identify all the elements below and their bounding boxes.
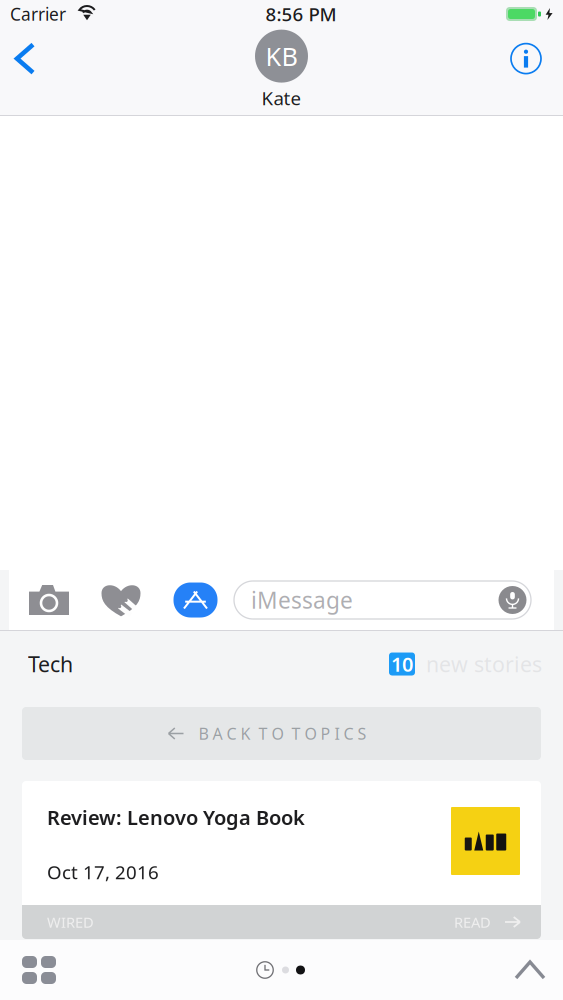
staticText: Carrier	[10, 2, 66, 25]
button[interactable]: B A C K T O T O P I C S	[22, 707, 541, 760]
staticText: Kate	[261, 86, 301, 110]
button[interactable]: Camera	[13, 570, 85, 630]
staticText: B A C K T O T O P I C S	[198, 723, 366, 744]
staticText: WIRED	[47, 912, 94, 932]
staticText: Oct 17, 2016	[47, 860, 159, 884]
staticText: 10	[391, 651, 413, 677]
button[interactable]: Digital Touch	[85, 570, 157, 630]
button[interactable]: Expand	[496, 940, 563, 1000]
button[interactable]: Review: Lenovo Yoga Book	[22, 781, 541, 939]
button[interactable]: Details	[511, 27, 563, 91]
button[interactable]: Back	[0, 26, 55, 92]
button[interactable]: App Store	[157, 570, 234, 630]
button[interactable]: App drawer	[0, 940, 76, 1000]
staticText: KB	[265, 39, 297, 73]
staticText: Review: Lenovo Yoga Book	[47, 804, 305, 831]
staticText: READ	[454, 912, 491, 932]
staticText: 8:56 PM	[265, 2, 336, 26]
staticText: new stories	[426, 650, 542, 678]
staticText: iMessage	[251, 585, 353, 615]
staticText: Tech	[28, 650, 73, 678]
